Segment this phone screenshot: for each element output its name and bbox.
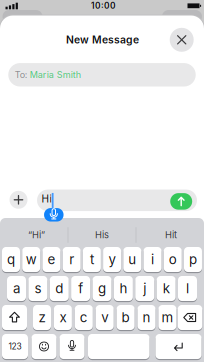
staticText: 10:00 (91, 1, 116, 11)
button[interactable]: To: (8, 63, 196, 86)
button[interactable]: Space (88, 334, 149, 359)
button[interactable]: “Hi” (22, 226, 51, 243)
staticText: s (34, 280, 41, 296)
button[interactable]: Send (170, 193, 192, 210)
staticText: e (47, 251, 55, 267)
button[interactable]: x (54, 305, 72, 330)
button[interactable]: y (103, 247, 121, 272)
staticText: r (69, 251, 74, 267)
staticText: Maria Smith (30, 69, 81, 80)
button[interactable]: u (123, 247, 141, 272)
button[interactable]: p (184, 247, 202, 272)
staticText: d (55, 280, 63, 296)
staticText: y (109, 251, 116, 267)
button[interactable]: Shift (2, 305, 27, 330)
staticText: k (163, 280, 170, 296)
staticText: To: (15, 69, 28, 80)
button[interactable]: w (22, 247, 40, 272)
button[interactable]: g (92, 276, 111, 301)
button[interactable]: n (137, 305, 155, 330)
button[interactable]: o (164, 247, 182, 272)
staticText: New Message (66, 33, 139, 46)
staticText: a (13, 280, 20, 296)
button[interactable]: b (117, 305, 135, 330)
staticText: “Hi” (28, 229, 45, 240)
button[interactable]: Dictate (59, 334, 84, 359)
button[interactable]: Close (170, 28, 194, 52)
staticText: o (169, 251, 177, 267)
staticText: Hi (41, 193, 51, 205)
staticText: b (122, 309, 130, 325)
button[interactable]: Delete (178, 305, 202, 330)
button[interactable]: c (75, 305, 93, 330)
staticText: z (38, 309, 45, 325)
button[interactable]: a (7, 276, 26, 301)
staticText: c (80, 309, 88, 325)
staticText: x (59, 309, 66, 325)
button[interactable]: v (96, 305, 114, 330)
staticText: p (189, 251, 197, 267)
staticText: Hit (165, 229, 177, 240)
button[interactable]: l (178, 276, 197, 301)
staticText: His (95, 229, 109, 240)
button[interactable]: r (63, 247, 81, 272)
staticText: w (26, 251, 37, 267)
button[interactable]: s (28, 276, 47, 301)
staticText: t (90, 251, 94, 267)
button[interactable]: His (89, 226, 115, 243)
button[interactable]: h (114, 276, 133, 301)
button[interactable]: t (83, 247, 101, 272)
button[interactable]: i (143, 247, 161, 272)
staticText: q (7, 251, 15, 267)
button[interactable]: Add attachment (9, 191, 27, 209)
staticText: j (143, 280, 146, 296)
staticText: f (78, 280, 83, 296)
button[interactable]: q (2, 247, 20, 272)
button[interactable]: j (135, 276, 154, 301)
button[interactable]: 123 (2, 334, 28, 359)
button[interactable]: Dictation (44, 208, 63, 222)
staticText: h (119, 280, 127, 296)
staticText: i (151, 251, 154, 267)
button[interactable]: Hit (159, 226, 183, 243)
button[interactable]: f (71, 276, 90, 301)
button[interactable]: Return (155, 334, 201, 359)
button[interactable]: Emoji (31, 334, 56, 359)
staticText: v (101, 309, 108, 325)
button[interactable]: z (33, 305, 51, 330)
button[interactable]: e (42, 247, 60, 272)
staticText: l (186, 280, 189, 296)
staticText: n (142, 309, 150, 325)
staticText: g (98, 280, 106, 296)
staticText: 123 (8, 341, 21, 352)
staticText: m (161, 309, 173, 325)
button[interactable]: m (158, 305, 176, 330)
button[interactable]: k (157, 276, 176, 301)
staticText: u (128, 251, 136, 267)
button[interactable]: d (50, 276, 69, 301)
